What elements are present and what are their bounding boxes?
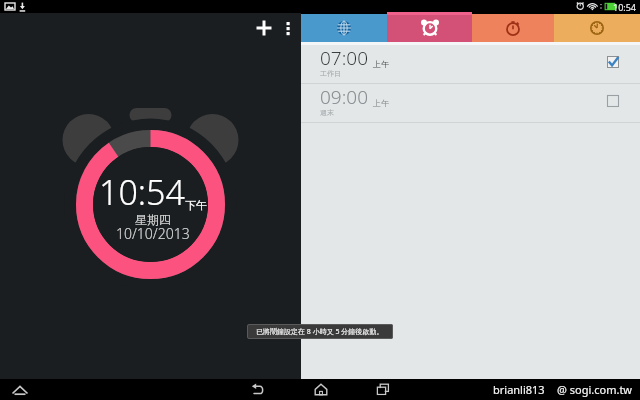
button[interactable]: Collapse bbox=[8, 379, 32, 400]
staticText: 上午 bbox=[373, 59, 389, 69]
button[interactable]: 07:00 bbox=[301, 45, 640, 83]
staticText: 下午 bbox=[185, 198, 207, 212]
staticText: @ sogi.com.tw bbox=[557, 382, 633, 397]
button[interactable]: Home bbox=[309, 379, 333, 400]
button[interactable]: 09:00 bbox=[301, 84, 640, 122]
button[interactable]: Back bbox=[246, 379, 270, 400]
staticText: 星期四 bbox=[135, 212, 171, 227]
button[interactable]: Toggle alarm bbox=[602, 90, 624, 112]
staticText: 10:54 bbox=[99, 169, 185, 215]
button[interactable]: Tab bbox=[554, 14, 640, 42]
button[interactable]: Add alarm bbox=[248, 10, 280, 46]
staticText: 09:00 bbox=[320, 84, 369, 110]
staticText: 已將鬧鐘設定在 8 小時又 5 分鐘後啟動。 bbox=[256, 327, 384, 337]
staticText: 10/10/2013 bbox=[116, 224, 190, 243]
staticText: 週末 bbox=[320, 108, 334, 117]
button[interactable]: Tab bbox=[301, 14, 387, 42]
button[interactable]: Tab bbox=[472, 14, 554, 42]
button[interactable]: Tab bbox=[387, 14, 472, 42]
staticText: 上午 bbox=[373, 98, 389, 108]
button[interactable]: More options bbox=[278, 10, 298, 46]
staticText: 10:54 bbox=[613, 1, 637, 13]
button[interactable]: Recent apps bbox=[371, 379, 395, 400]
staticText: 07:00 bbox=[320, 45, 369, 71]
staticText: brianli813 bbox=[493, 382, 545, 397]
staticText: 工作日 bbox=[320, 69, 341, 78]
button[interactable]: Toggle alarm bbox=[602, 51, 624, 73]
